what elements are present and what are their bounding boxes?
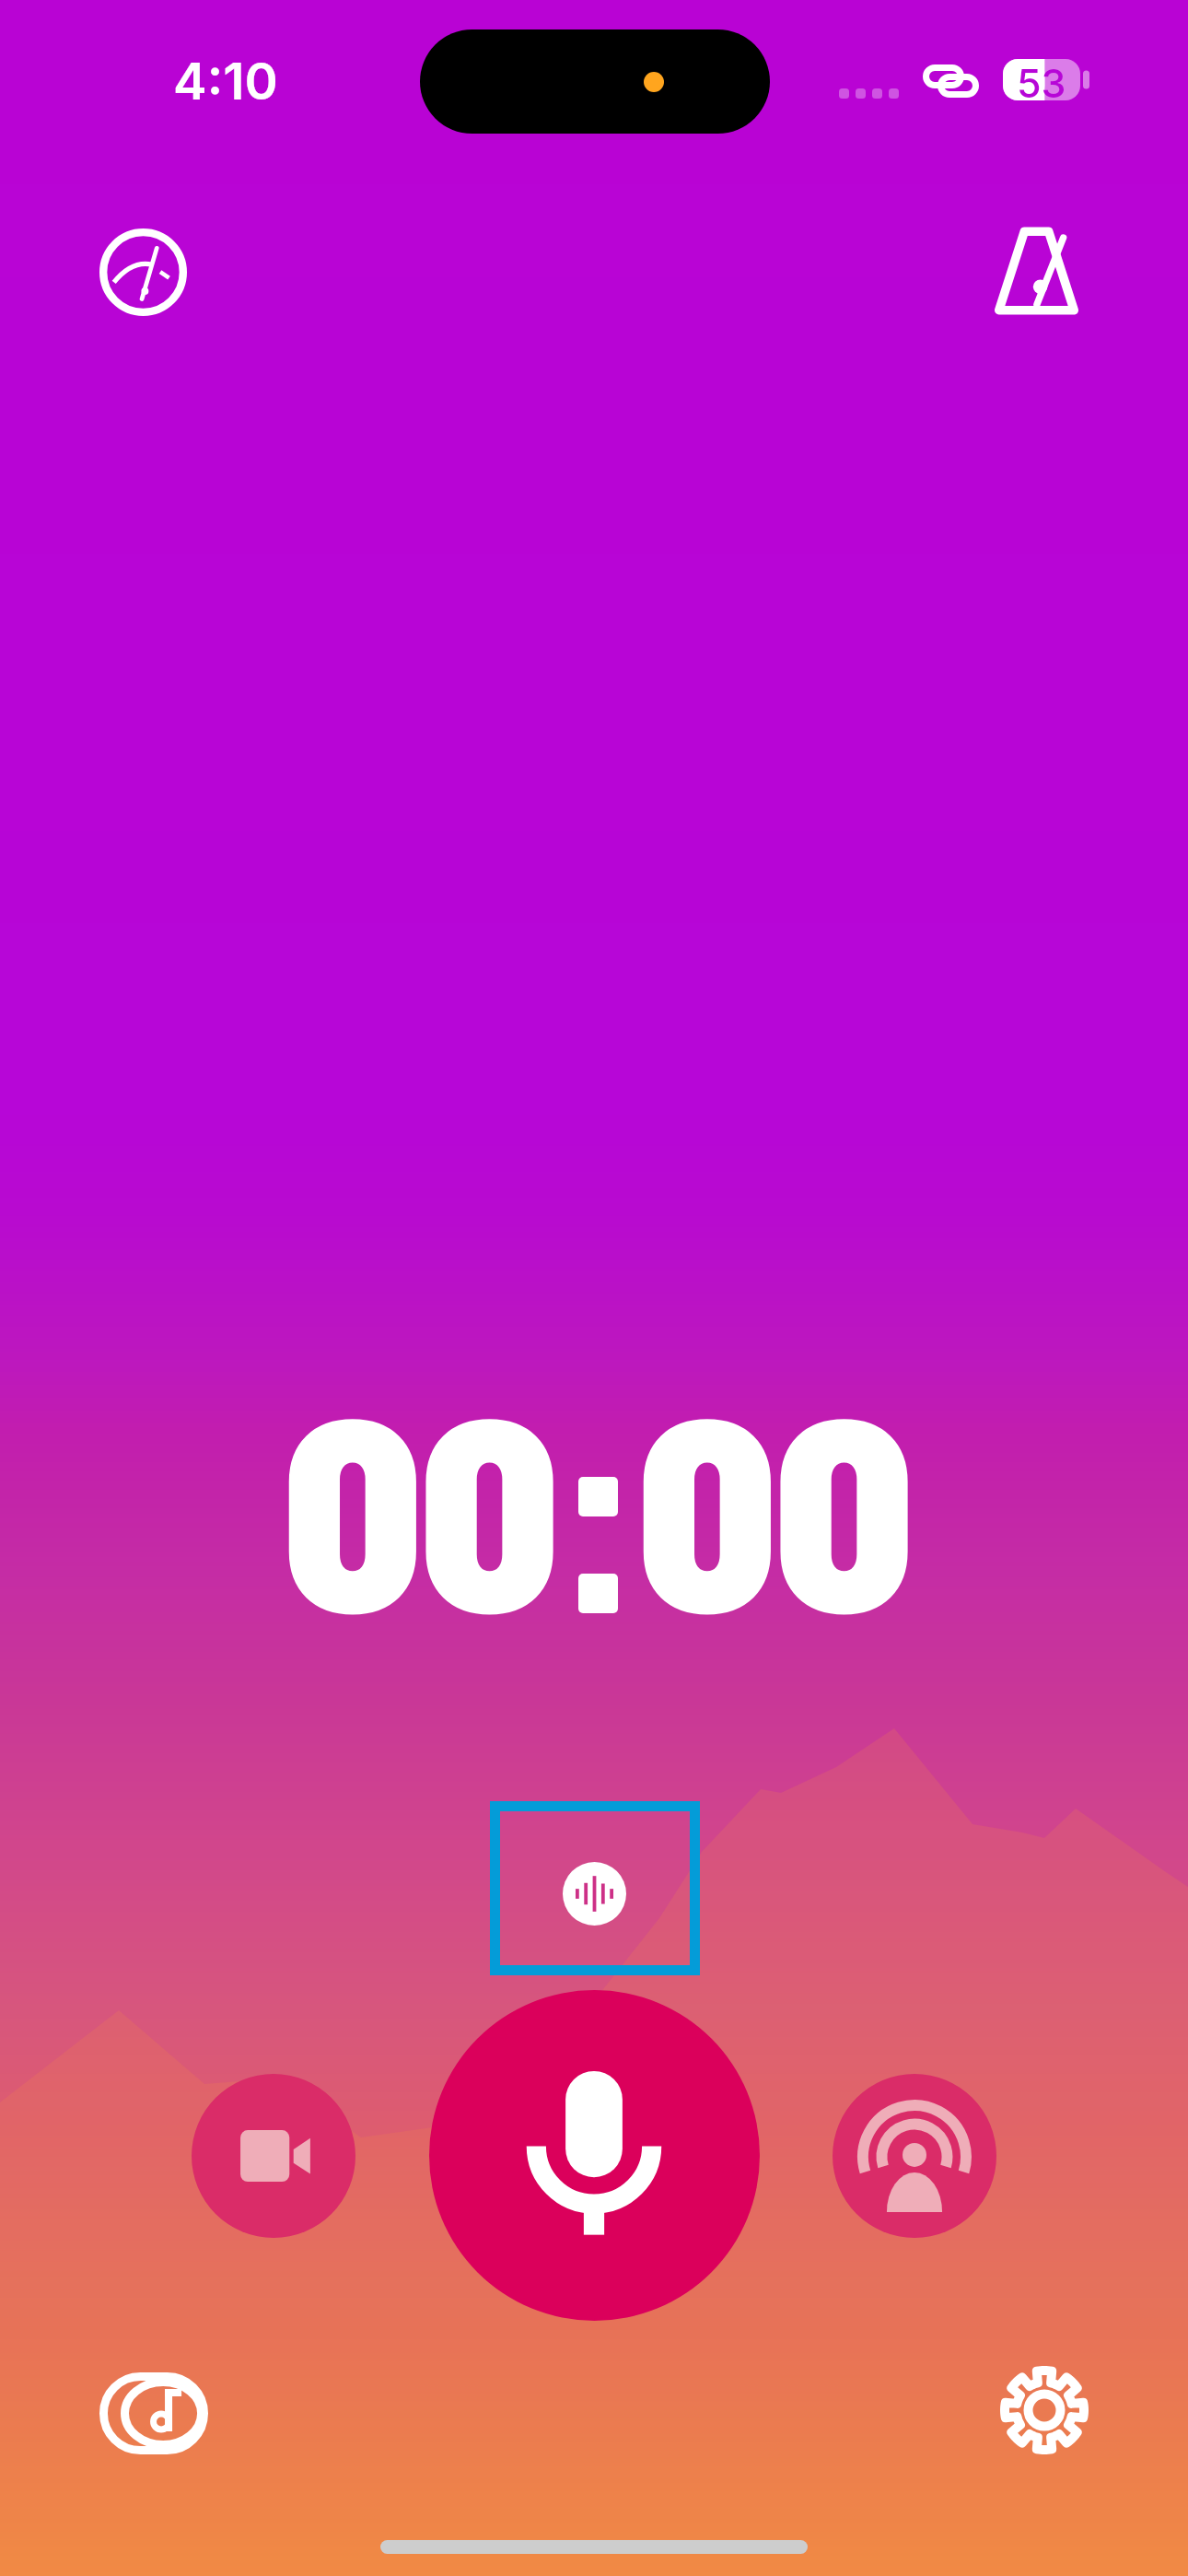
button[interactable]: Live broadcast	[833, 2074, 996, 2238]
button[interactable]: Tuner	[99, 228, 187, 316]
staticText: 53	[1017, 59, 1066, 100]
button[interactable]: Video recording	[192, 2074, 355, 2238]
button[interactable]: Record	[429, 1990, 760, 2321]
staticText: 00	[637, 1341, 912, 1666]
button[interactable]: Library	[99, 2372, 208, 2454]
button[interactable]: Settings	[998, 2363, 1090, 2457]
button[interactable]: Audio waveform	[490, 1801, 700, 1975]
staticText: 00	[283, 1341, 557, 1666]
button[interactable]: Metronome	[995, 227, 1078, 315]
staticText: 4:10	[173, 51, 278, 112]
